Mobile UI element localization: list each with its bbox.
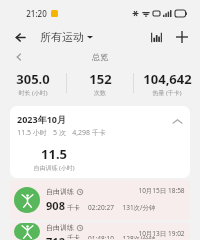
staticText: 21:20 [26,8,47,19]
staticText: 总览 [92,52,108,62]
staticText: 104,642 [143,70,192,88]
staticText: 152 [89,70,112,88]
button[interactable]: Back [10,27,30,47]
staticText: 2023年10月 [17,113,66,125]
staticText: 所有运动 [40,30,84,44]
staticText: 千卡 [67,234,80,239]
button[interactable]: 自由训练 [10,180,190,220]
button[interactable]: 152 [67,70,133,97]
button[interactable]: Add [172,27,192,47]
button[interactable]: Collapse [170,114,184,128]
staticText: 02:20:27 [88,203,114,212]
button[interactable]: Statistics [146,27,166,47]
staticText: 908 [46,198,65,213]
staticText: 时长 (小时) [18,89,48,97]
staticText: 自由训练 [46,223,74,232]
button[interactable]: 305.0 [0,70,66,97]
button[interactable]: 所有运动 [40,30,93,44]
button[interactable]: 104,642 [134,70,200,97]
staticText: 10月13日 19:02 [138,229,185,238]
button[interactable]: Previous period [12,50,26,64]
staticText: 01:48:10 [88,234,114,239]
button[interactable]: 2023年10月 [10,106,190,178]
staticText: 4,298 千卡 [72,128,106,138]
staticText: 11.5 [41,145,67,163]
button[interactable]: 自由训练 [10,223,190,240]
staticText: 自由训练 [46,187,74,196]
staticText: 次数 [94,89,106,97]
staticText: 10月15日 18:58 [138,186,185,195]
staticText: 自由训练 (小时) [33,164,75,172]
staticText: 131次/分钟 [122,203,156,212]
staticText: 千卡 [67,204,80,212]
staticText: 712 [46,234,65,240]
staticText: 305.0 [16,70,50,88]
staticText: 5 次 [53,128,66,138]
staticText: 11.5 小时 [17,128,47,138]
staticText: 128次/分钟 [122,234,156,239]
staticText: 热量 (千卡) [152,89,182,97]
